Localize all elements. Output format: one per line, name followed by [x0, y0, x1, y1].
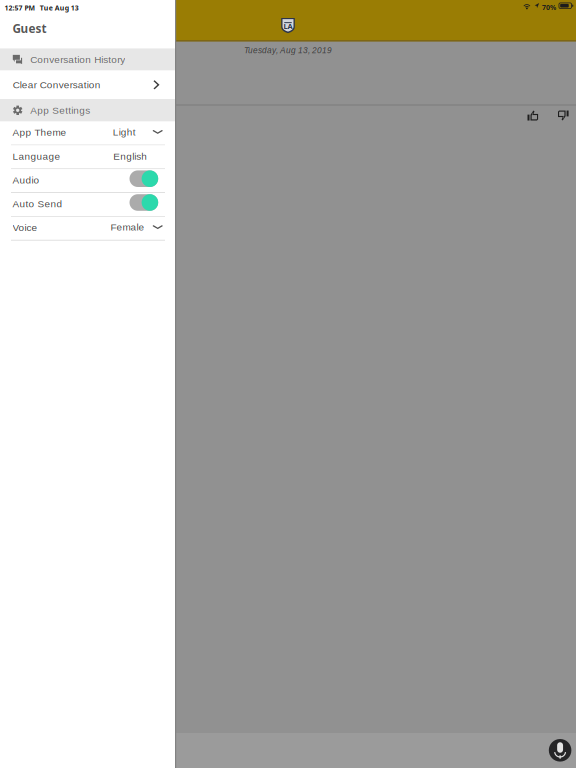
staticText: Guest: [13, 20, 47, 36]
staticText: Language: [13, 151, 61, 162]
staticText: LA: [283, 21, 292, 31]
staticText: 70%: [542, 3, 556, 12]
staticText: Audio: [13, 174, 40, 186]
button[interactable]: Helpful: [527, 110, 538, 120]
button[interactable]: Conversation History: [0, 48, 175, 71]
staticText: Clear Conversation: [13, 79, 101, 90]
staticText: Female: [110, 222, 144, 233]
staticText: App Settings: [30, 105, 90, 116]
button[interactable]: Voice input: [549, 739, 571, 762]
staticText: Voice: [13, 222, 38, 233]
button[interactable]: App Settings: [0, 99, 175, 122]
staticText: App Theme: [13, 127, 67, 138]
button[interactable]: Language: [0, 145, 175, 169]
staticText: 12:57 PM: [5, 3, 36, 12]
staticText: Tuesday, Aug 13, 2019: [244, 46, 332, 55]
staticText: English: [113, 151, 147, 162]
staticText: Auto Send: [13, 198, 63, 209]
button[interactable]: Auto Send: [0, 193, 175, 217]
staticText: Conversation History: [30, 54, 125, 65]
staticText: Light: [113, 126, 136, 137]
button[interactable]: Clear Conversation: [0, 71, 175, 99]
staticText: Tue Aug 13: [40, 3, 79, 12]
button[interactable]: App Theme: [0, 122, 175, 145]
button[interactable]: Voice: [0, 217, 175, 241]
button[interactable]: Audio: [0, 169, 175, 193]
button[interactable]: Not helpful: [558, 110, 569, 120]
